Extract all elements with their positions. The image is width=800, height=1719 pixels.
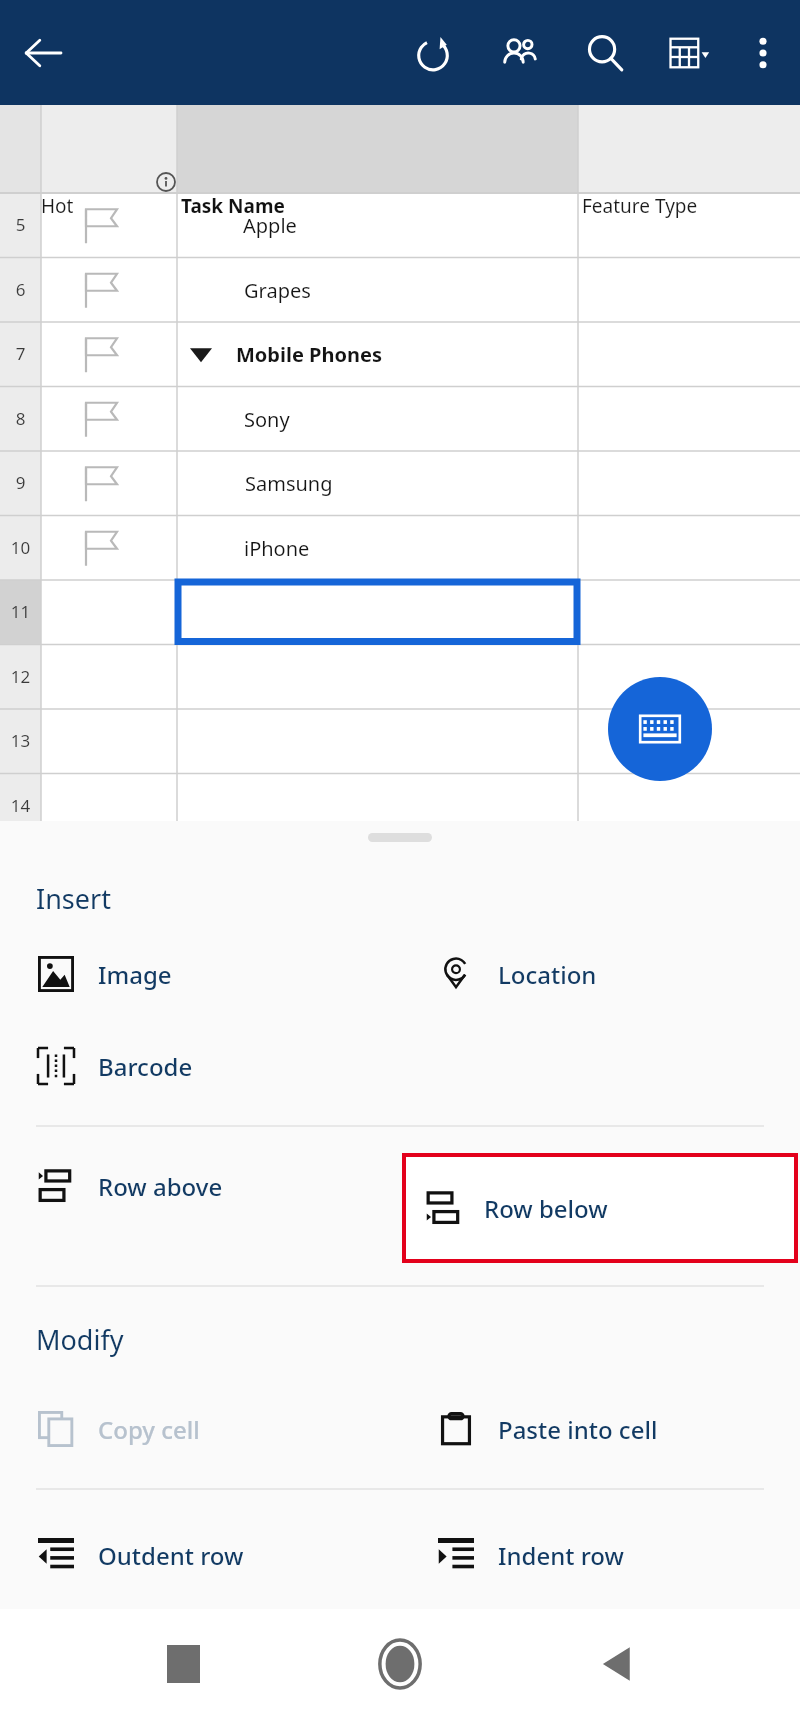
button[interactable]: Row above [0,1155,400,1217]
staticText: 13 [0,729,41,752]
button[interactable]: Back [583,1629,653,1699]
button[interactable]: Indent row [400,1524,800,1586]
button[interactable]: Recents [148,1629,218,1699]
button[interactable]: Outdent row [0,1524,400,1586]
staticText: Location [498,958,597,991]
staticText: Hot [41,193,74,219]
staticText: Row below [484,1192,608,1225]
button[interactable]: Views [658,22,720,84]
button[interactable]: Refresh [402,22,464,84]
staticText: 12 [0,665,41,688]
staticText: 7 [0,342,41,365]
staticText: Insert [36,880,111,917]
staticText: Modify [36,1321,124,1358]
button[interactable]: Copy cell [0,1398,400,1460]
button[interactable]: Home [365,1629,435,1699]
staticText: Outdent row [98,1539,244,1572]
button[interactable]: Back [10,20,76,86]
staticText: Feature Type [582,193,698,219]
staticText: Sony [244,406,290,433]
staticText: 6 [0,278,41,301]
staticText: 11 [0,600,41,623]
staticText: 9 [0,471,41,494]
staticText: Indent row [498,1539,624,1572]
staticText: Mobile Phones [236,341,382,368]
button[interactable]: Row below [404,1155,796,1261]
staticText: Apple [243,212,297,239]
button[interactable]: More options [732,22,794,84]
staticText: Image [98,958,172,991]
staticText: Copy cell [98,1413,200,1446]
button[interactable]: Contacts [488,22,550,84]
button[interactable]: Barcode [0,1035,400,1097]
staticText: Grapes [244,277,311,304]
staticText: Samsung [245,470,333,497]
staticText: 10 [0,536,41,559]
button[interactable]: Location [400,943,800,1005]
button[interactable]: Paste into cell [400,1398,800,1460]
staticText: Row above [98,1170,223,1203]
staticText: iPhone [244,535,310,562]
staticText: Task Name [181,193,285,219]
button[interactable]: Keyboard [608,677,712,781]
staticText: 5 [0,213,41,236]
button[interactable]: Search [574,22,636,84]
staticText: 14 [0,794,41,817]
button[interactable]: Image [0,943,400,1005]
staticText: Paste into cell [498,1413,658,1446]
staticText: 8 [0,407,41,430]
staticText: Barcode [98,1050,193,1083]
